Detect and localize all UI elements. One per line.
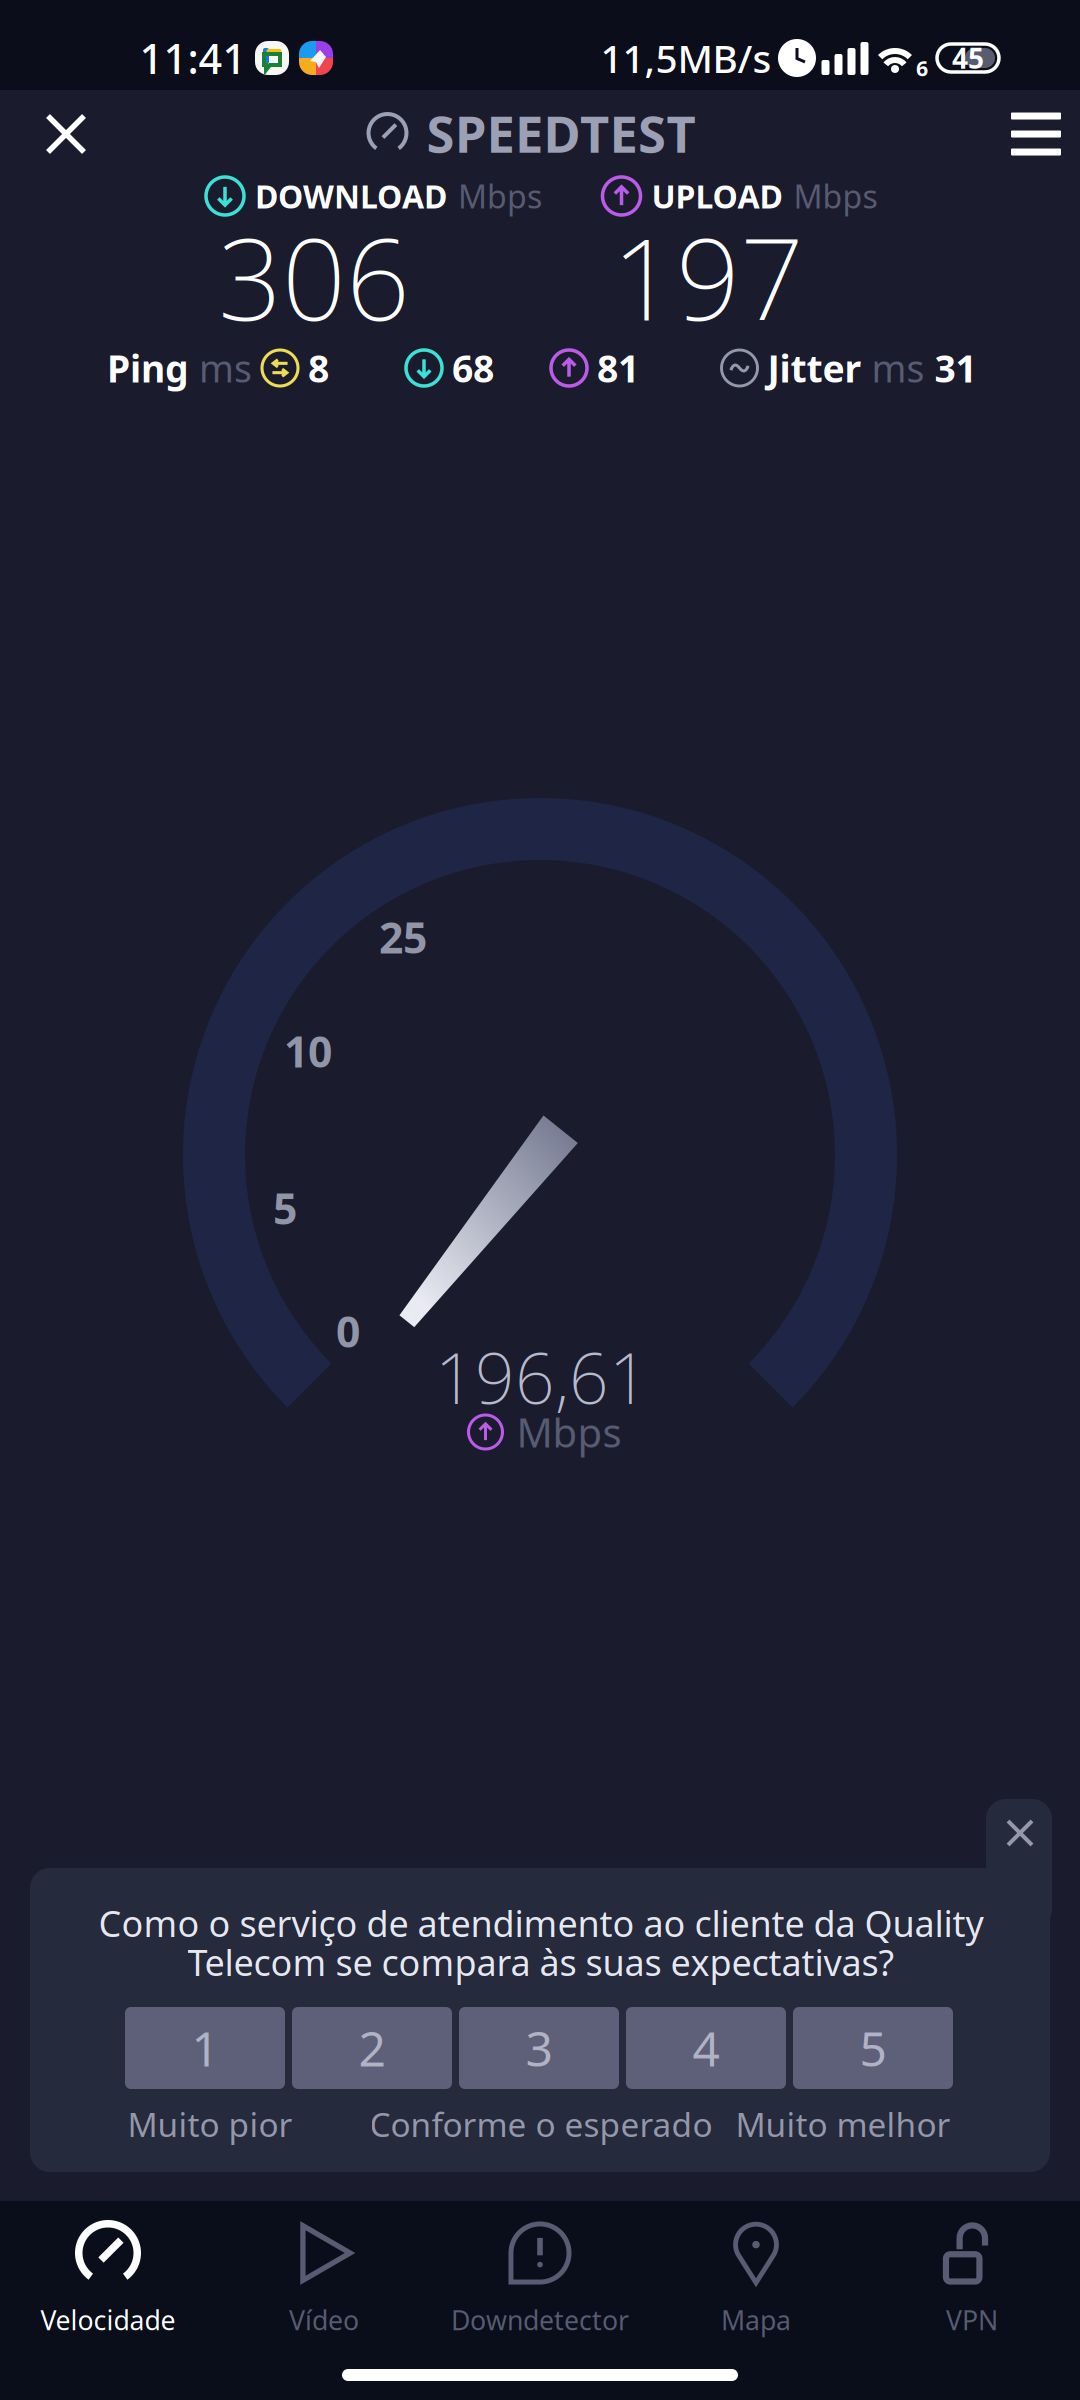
staticText: 8: [308, 343, 329, 393]
staticText: 11,5MB/s: [600, 32, 771, 84]
button[interactable]: 3: [459, 2007, 619, 2089]
staticText: Muito pior: [127, 2102, 292, 2146]
staticText: 81: [597, 343, 639, 393]
staticText: Telecom se compara às suas expectativas?: [187, 1938, 894, 1986]
staticText: Mapa: [721, 2302, 791, 2338]
button[interactable]: 1: [125, 2007, 285, 2089]
button[interactable]: 2: [292, 2007, 452, 2089]
staticText: VPN: [946, 2302, 998, 2338]
staticText: 4: [692, 2016, 719, 2080]
staticText: DOWNLOAD: [255, 175, 447, 217]
button[interactable]: Dismiss: [983, 1796, 1057, 1870]
staticText: Vídeo: [289, 2302, 359, 2338]
staticText: 3: [525, 2016, 552, 2080]
button[interactable]: VPN: [864, 2197, 1080, 2309]
staticText: 5: [859, 2016, 886, 2080]
button[interactable]: Mapa: [648, 2197, 864, 2309]
staticText: 31: [934, 343, 976, 393]
button[interactable]: 5: [793, 2007, 953, 2089]
staticText: 1: [191, 2016, 218, 2080]
staticText: 10: [284, 1023, 332, 1079]
staticText: Mbps: [516, 1405, 621, 1458]
button[interactable]: Downdetector: [432, 2197, 648, 2309]
staticText: Conforme o esperado: [369, 2102, 712, 2146]
staticText: 68: [452, 343, 494, 393]
staticText: 196,61: [435, 1331, 649, 1423]
button[interactable]: Vídeo: [216, 2197, 432, 2309]
staticText: 11:41: [139, 31, 246, 85]
staticText: 306: [218, 203, 410, 351]
staticText: Mbps: [458, 175, 542, 217]
button[interactable]: Close: [19, 87, 113, 181]
button[interactable]: 4: [626, 2007, 786, 2089]
staticText: 2: [358, 2016, 385, 2080]
staticText: Mbps: [793, 175, 877, 217]
button[interactable]: Velocidade: [0, 2197, 216, 2309]
staticText: UPLOAD: [651, 175, 782, 217]
staticText: 45: [952, 39, 984, 77]
staticText: 0: [336, 1303, 360, 1359]
staticText: ms: [871, 343, 924, 393]
staticText: Velocidade: [40, 2302, 175, 2338]
staticText: 5: [273, 1180, 297, 1236]
staticText: Muito melhor: [735, 2102, 950, 2146]
staticText: Jitter: [767, 343, 861, 393]
button[interactable]: Menu: [985, 86, 1080, 181]
staticText: 197: [612, 203, 804, 351]
staticText: Como o serviço de atendimento ao cliente…: [98, 1899, 983, 1947]
staticText: 6: [916, 54, 928, 82]
staticText: ms: [199, 343, 252, 393]
staticText: SPEEDTEST: [426, 99, 695, 167]
staticText: Downdetector: [451, 2302, 629, 2338]
staticText: 25: [379, 909, 427, 965]
staticText: Ping: [107, 343, 189, 393]
